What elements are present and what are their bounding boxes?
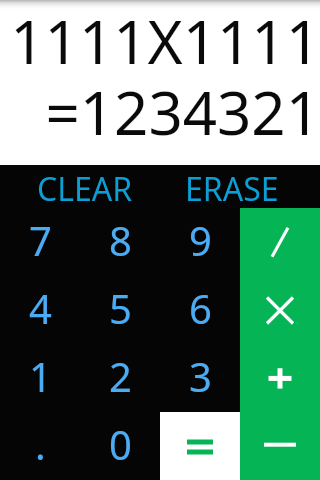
staticText: 8	[109, 213, 132, 267]
staticText: .	[35, 417, 46, 471]
staticText: 1111X1111	[0, 0, 320, 72]
staticText: 7	[29, 213, 52, 267]
staticText: =1234321	[0, 71, 320, 143]
button[interactable]: Minus	[240, 412, 320, 480]
button[interactable]: Equals	[160, 412, 240, 480]
staticText: ERASE	[185, 167, 279, 210]
button[interactable]: 2	[80, 344, 160, 412]
button[interactable]: Multiply	[240, 276, 320, 344]
button[interactable]: ERASE	[160, 165, 320, 208]
staticText: 0	[109, 417, 132, 471]
button[interactable]: 5	[80, 276, 160, 344]
staticText: CLEAR	[37, 167, 133, 210]
button[interactable]: 6	[160, 276, 240, 344]
button[interactable]: Divide	[240, 208, 320, 276]
button[interactable]: 4	[0, 276, 80, 344]
button[interactable]: 0	[80, 412, 160, 480]
staticText: 3	[189, 349, 212, 403]
staticText: 6	[189, 281, 212, 335]
button[interactable]: CLEAR	[0, 165, 160, 208]
button[interactable]: 8	[80, 208, 160, 276]
staticText: 2	[109, 349, 132, 403]
staticText: 9	[189, 213, 212, 267]
button[interactable]: 9	[160, 208, 240, 276]
button[interactable]: 7	[0, 208, 80, 276]
button[interactable]: 1	[0, 344, 80, 412]
button[interactable]: Plus	[240, 344, 320, 412]
button[interactable]: 3	[160, 344, 240, 412]
staticText: 4	[29, 281, 52, 335]
staticText: 1	[29, 349, 52, 403]
staticText: 5	[109, 281, 132, 335]
button[interactable]: .	[0, 412, 80, 480]
